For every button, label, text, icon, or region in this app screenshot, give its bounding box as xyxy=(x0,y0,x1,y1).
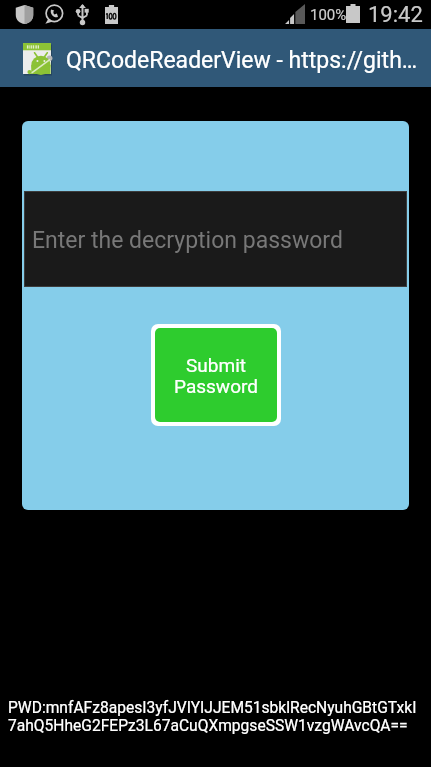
other: Security shield xyxy=(15,5,34,24)
button[interactable]: Submit Password xyxy=(151,324,281,426)
staticText: Submit Password xyxy=(174,354,258,397)
staticText: Enter the decryption password xyxy=(32,227,343,254)
staticText: QRCodeReaderView - https://gith… xyxy=(66,47,418,74)
button[interactable]: QRCodeReaderView app icon xyxy=(23,43,51,74)
other: Mobile signal strength xyxy=(284,4,305,24)
other: WhatsApp notification xyxy=(45,5,63,24)
staticText: 100% xyxy=(310,6,347,24)
other: USB connected xyxy=(76,4,89,25)
button[interactable]: Enter the decryption password xyxy=(24,191,407,287)
staticText: 19:42 xyxy=(368,2,423,28)
other: Battery full xyxy=(346,4,360,23)
other: Battery 100 percent xyxy=(105,5,118,24)
staticText: PWD:mnfAFz8apesI3yfJVIYIJJEM51sbklRecNyu… xyxy=(8,699,417,735)
